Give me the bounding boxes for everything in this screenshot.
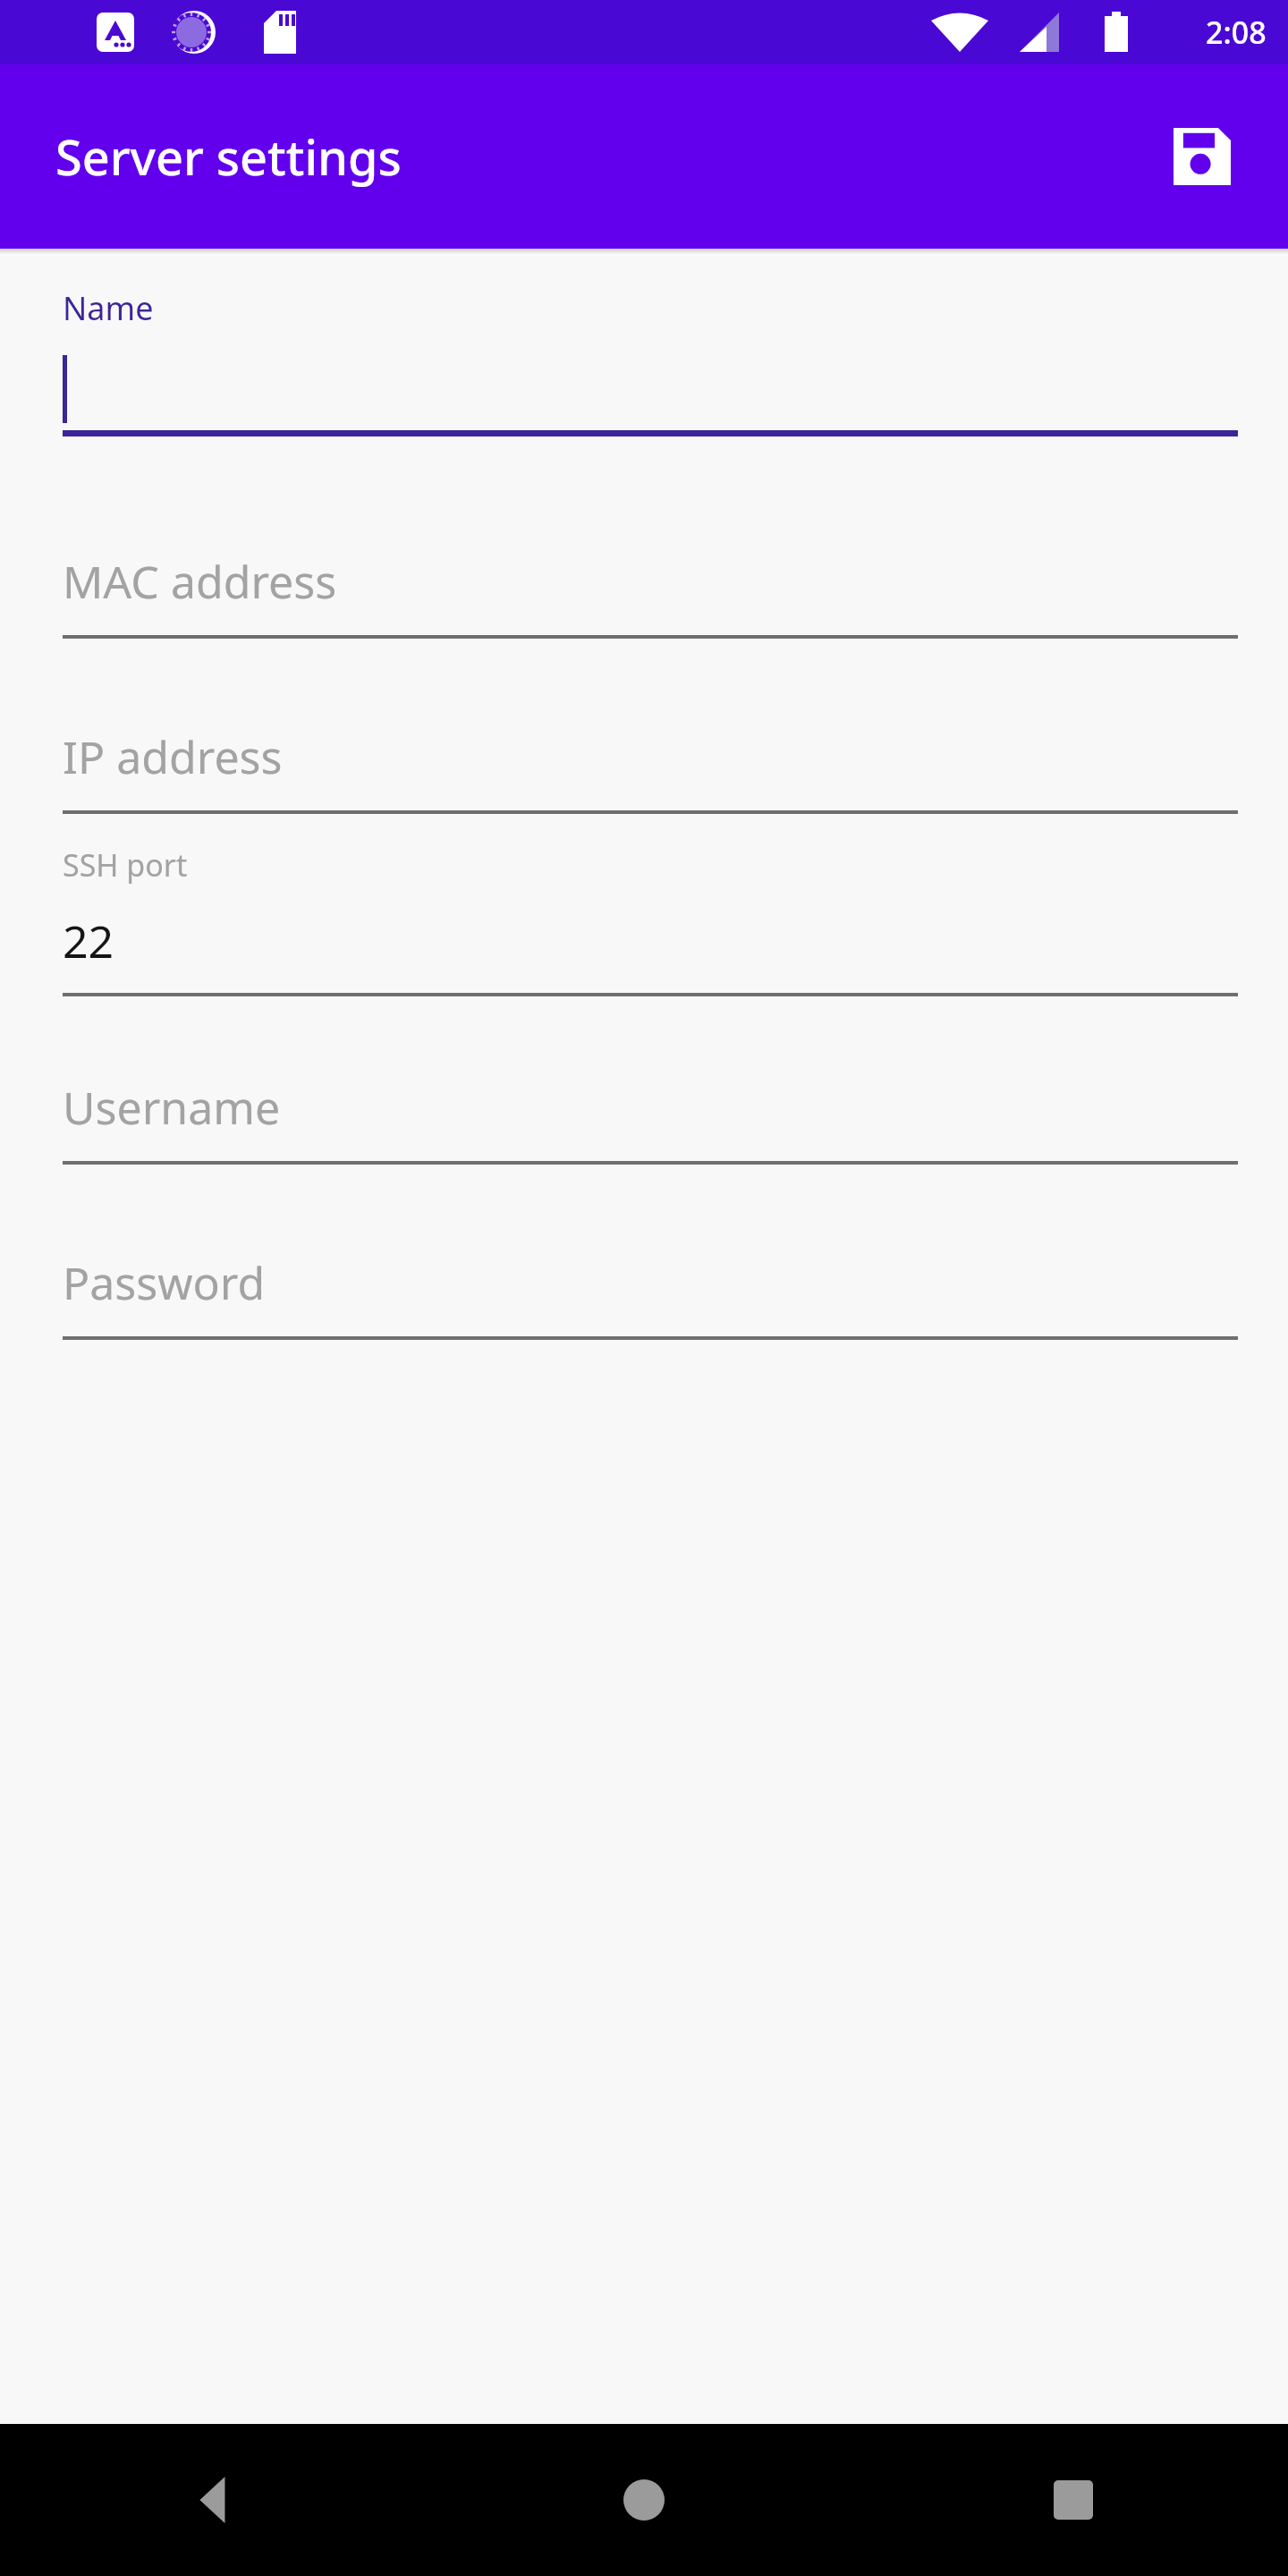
button[interactable]: Username	[0, 1027, 1288, 1179]
staticText: Password	[63, 1252, 266, 1313]
staticText: Username	[63, 1077, 281, 1138]
button[interactable]: Back	[0, 2424, 429, 2576]
button[interactable]: IP address	[0, 676, 1288, 828]
button[interactable]: Recents	[859, 2424, 1288, 2576]
staticText: IP address	[63, 726, 283, 787]
staticText: MAC address	[63, 551, 337, 612]
button[interactable]: Name	[0, 254, 1288, 478]
button[interactable]: SSH port	[0, 844, 1288, 1020]
staticText: Name	[63, 286, 154, 330]
staticText: 2:08	[1206, 12, 1267, 53]
button[interactable]: Save	[1152, 106, 1252, 207]
staticText: SSH port	[63, 844, 188, 885]
button[interactable]: Password	[0, 1202, 1288, 1354]
button[interactable]: Home	[429, 2424, 859, 2576]
staticText: Server settings	[55, 123, 402, 190]
button[interactable]: MAC address	[0, 501, 1288, 653]
staticText: 22	[63, 911, 114, 971]
